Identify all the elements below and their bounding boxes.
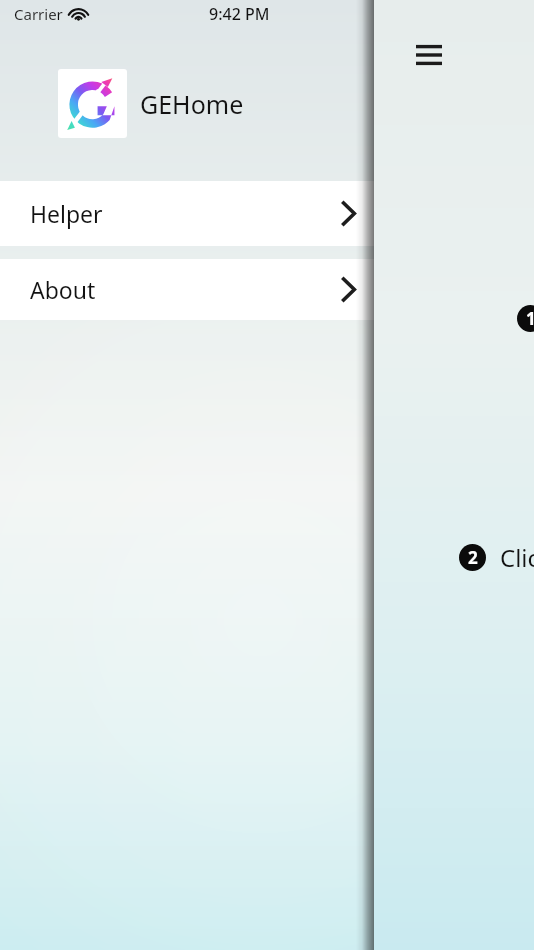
- staticText: Helper: [30, 198, 103, 229]
- staticText: GEHome: [140, 87, 244, 121]
- staticText: About: [30, 274, 96, 305]
- staticText: Click: [500, 541, 534, 574]
- staticText: 9:42 PM: [209, 3, 270, 25]
- staticText: 2: [468, 546, 478, 569]
- button[interactable]: Open navigation menu: [406, 32, 452, 78]
- button[interactable]: Helper: [0, 181, 374, 246]
- button[interactable]: About: [0, 259, 374, 320]
- staticText: 1: [526, 307, 534, 330]
- staticText: Carrier: [14, 4, 63, 24]
